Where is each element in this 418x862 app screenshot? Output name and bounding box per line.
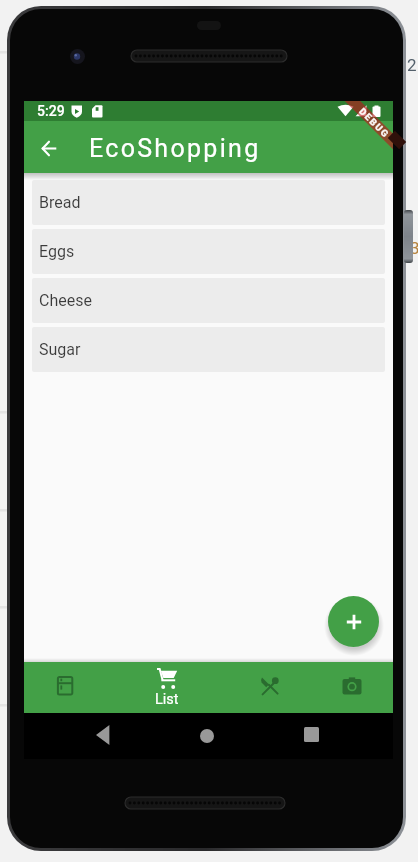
staticText: Eggs	[39, 242, 75, 261]
button[interactable]	[31, 130, 67, 166]
button[interactable]	[87, 717, 123, 753]
button[interactable]: List	[106, 662, 229, 713]
button[interactable]	[229, 662, 311, 713]
button[interactable]: Bread	[32, 180, 385, 225]
button[interactable]: Cheese	[32, 278, 385, 323]
button[interactable]	[311, 662, 393, 713]
staticText: List	[155, 691, 179, 708]
staticText: Bread	[39, 193, 81, 212]
staticText: Cheese	[39, 291, 92, 310]
button[interactable]	[189, 718, 225, 754]
staticText: 5:29	[37, 103, 65, 119]
staticText: EcoShopping	[89, 134, 261, 163]
button[interactable]: Eggs	[32, 229, 385, 274]
staticText: Sugar	[39, 340, 81, 359]
button[interactable]	[293, 716, 329, 752]
button[interactable]	[328, 596, 379, 647]
staticText: 2	[407, 55, 417, 75]
staticText: DEBUG	[357, 106, 392, 140]
button[interactable]: Sugar	[32, 327, 385, 372]
staticText: 3	[410, 238, 418, 258]
button[interactable]	[24, 662, 106, 713]
